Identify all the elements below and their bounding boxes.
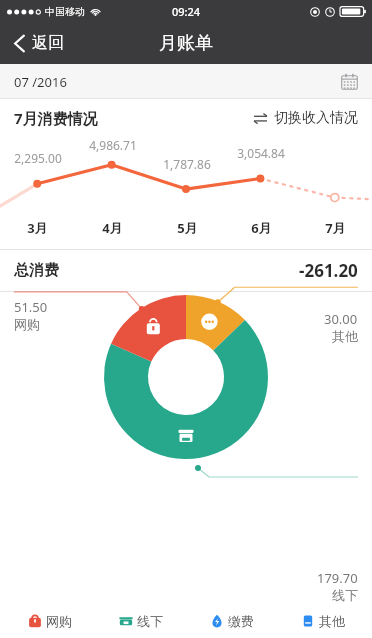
staticText: 09:24 [172,4,201,19]
button[interactable]: 切换收入情况 [239,103,372,133]
button[interactable]: 缴费 [186,604,277,638]
staticText: 线下 [332,587,358,603]
button[interactable]: 返回 [0,24,78,62]
staticText: 51.50 [14,298,48,316]
staticText: 其他 [319,613,345,629]
staticText: 月账单 [159,32,213,55]
staticText: 07 /2016 [14,73,67,91]
staticText: 缴费 [228,613,254,629]
button[interactable]: 07 /2016 [0,64,372,99]
button[interactable]: 其他 [277,604,368,638]
staticText: 30.00 [324,310,358,328]
staticText: 切换收入情况 [274,109,358,127]
staticText: 4,986.71 [89,137,137,153]
staticText: 7月消费情况 [14,108,98,128]
staticText: 3,054.84 [237,145,285,161]
staticText: 4月 [102,219,123,237]
staticText: 网购 [14,316,40,332]
button[interactable]: 网购 [4,604,95,638]
staticText: 6月 [251,219,272,237]
staticText: 5月 [177,219,198,237]
staticText: 3月 [27,219,48,237]
staticText: 中国移动 [45,5,85,18]
other: 选择月份 [341,73,358,90]
staticText: 1,787.86 [163,156,211,172]
staticText: 网购 [46,613,72,629]
staticText: 总消费 [14,261,59,280]
staticText: 2,295.00 [14,150,62,166]
staticText: 线下 [137,613,163,629]
staticText: 7月 [325,219,346,237]
staticText: 179.70 [317,569,358,587]
button[interactable]: 线下 [95,604,186,638]
staticText: 返回 [32,33,64,53]
staticText: -261.20 [299,259,358,282]
staticText: 其他 [332,328,358,344]
